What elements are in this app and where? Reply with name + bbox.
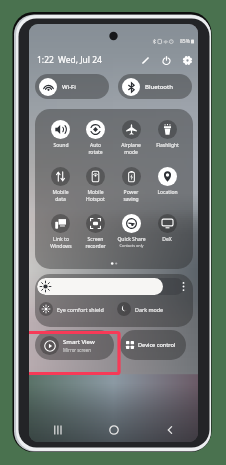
staticText: 85% — [180, 38, 190, 45]
button[interactable]: Power saving — [113, 167, 149, 203]
staticText: DeX — [162, 236, 172, 243]
staticText: Smart View — [63, 338, 95, 346]
button[interactable]: Sound — [43, 120, 78, 149]
button[interactable]: Home — [86, 418, 142, 442]
staticText: Contacts only — [119, 243, 144, 248]
button[interactable]: Wi-Fi — [35, 74, 109, 99]
staticText: Power saving — [123, 189, 139, 203]
button[interactable]: Bluetooth — [118, 74, 192, 99]
button[interactable]: Power — [160, 54, 172, 66]
button[interactable]: Location — [149, 167, 185, 196]
staticText: Auto rotate — [88, 142, 103, 156]
button[interactable]: Flashlight — [149, 120, 185, 149]
staticText: Eye comfort shield — [57, 306, 104, 313]
staticText: Mirror screen — [63, 347, 91, 353]
staticText: Location — [157, 189, 178, 196]
button[interactable]: Mobile Hotspot — [78, 167, 113, 203]
staticText: Airplane mode — [121, 142, 141, 156]
button[interactable]: Quick Share — [113, 214, 149, 248]
staticText: Screen recorder — [85, 236, 106, 250]
staticText: Flashlight — [156, 142, 179, 149]
button[interactable]: Mobile data — [43, 167, 78, 203]
button[interactable]: DeX — [149, 214, 185, 243]
staticText: Bluetooth — [145, 83, 173, 91]
button[interactable]: Airplane mode — [113, 120, 149, 156]
button[interactable]: Back — [142, 418, 198, 442]
staticText: Mobile Hotspot — [86, 189, 105, 203]
staticText: Link to Windows — [50, 236, 72, 250]
button[interactable]: Brightness options — [175, 278, 192, 295]
staticText: Sound — [53, 142, 69, 149]
button[interactable]: Screen recorder — [78, 214, 113, 250]
button[interactable]: Link to Windows — [43, 214, 78, 250]
button[interactable]: Dark mode — [117, 298, 189, 320]
staticText: Device control — [138, 341, 176, 349]
button[interactable]: Auto rotate — [78, 120, 113, 156]
staticText: Dark mode — [135, 306, 164, 313]
button[interactable]: Edit — [139, 54, 151, 66]
staticText: Wi-Fi — [62, 83, 76, 91]
button[interactable]: Eye comfort shield — [39, 298, 117, 320]
button[interactable]: Recents — [29, 418, 86, 442]
button[interactable] — [37, 278, 184, 295]
button[interactable]: Settings — [181, 54, 193, 66]
button[interactable]: Smart View — [35, 330, 114, 360]
staticText: Mobile data — [52, 189, 69, 203]
staticText: 1:22 — [37, 54, 54, 66]
staticText: Wed, Jul 24 — [58, 54, 102, 66]
button[interactable]: Device control — [120, 330, 186, 360]
staticText: Quick Share — [117, 236, 146, 243]
